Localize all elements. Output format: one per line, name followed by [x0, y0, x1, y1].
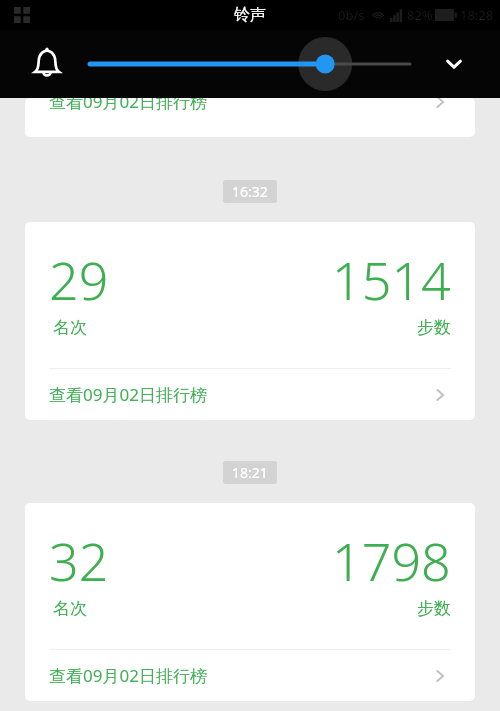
button[interactable]: 32 [25, 503, 475, 701]
staticText: 18:21 [232, 463, 268, 482]
other: Ringer volume [29, 46, 65, 82]
staticText: 0b/s [338, 6, 365, 24]
button[interactable]: 查看09月02日排行榜 [25, 369, 475, 420]
staticText: 1514 [332, 244, 451, 315]
button[interactable]: Volume slider [90, 36, 410, 92]
staticText: 查看09月02日排行榜 [49, 98, 207, 113]
staticText: 16:32 [232, 182, 268, 201]
staticText: 名次 [53, 598, 87, 619]
staticText: 查看09月02日排行榜 [49, 664, 207, 687]
button[interactable]: Expand volume controls [436, 46, 472, 82]
staticText: 铃声 [234, 5, 266, 25]
staticText: 步数 [417, 317, 451, 338]
staticText: 步数 [417, 598, 451, 619]
staticText: 18:28 [460, 6, 494, 24]
button[interactable]: 查看09月02日排行榜 [25, 98, 475, 137]
staticText: 1798 [332, 525, 451, 596]
staticText: 29 [49, 244, 109, 315]
button[interactable]: 查看09月02日排行榜 [25, 650, 475, 701]
staticText: 名次 [53, 317, 87, 338]
staticText: 32 [49, 525, 109, 596]
staticText: 查看09月02日排行榜 [49, 383, 207, 406]
button[interactable]: 29 [25, 222, 475, 420]
staticText: 82% [407, 6, 433, 24]
